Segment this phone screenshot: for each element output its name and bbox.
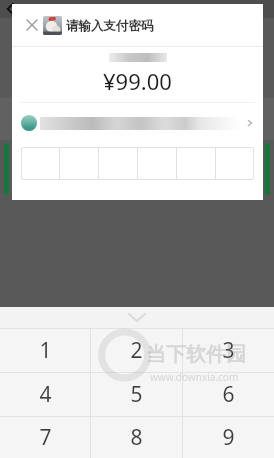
staticText: 2 [130, 336, 143, 365]
button[interactable]: 7 [0, 417, 90, 458]
button[interactable]: 8 [91, 417, 182, 458]
staticText: www.downxia.com [150, 370, 239, 384]
staticText: 请输入支付密码 [66, 18, 154, 34]
staticText: 6 [222, 380, 235, 409]
staticText: 5 [130, 380, 143, 409]
staticText: 9 [222, 423, 235, 452]
staticText: 8 [130, 423, 143, 452]
staticText: 7 [39, 423, 52, 452]
button[interactable]: 1 [0, 329, 90, 372]
button[interactable]: 2 [91, 329, 182, 372]
button[interactable]: 关闭 [20, 13, 44, 37]
button[interactable]: 3 [183, 329, 274, 372]
staticText: 3 [222, 336, 235, 365]
staticText: 当下软件园 [146, 342, 246, 367]
button[interactable]: 4 [0, 373, 90, 416]
staticText: 1 [39, 336, 52, 365]
button[interactable]: 6 [183, 373, 274, 416]
button[interactable]: 支付密码输入框 [21, 147, 254, 180]
button[interactable] [12, 103, 263, 143]
button[interactable]: 9 [183, 417, 274, 458]
staticText: ¥99.00 [103, 66, 172, 96]
button[interactable]: 5 [91, 373, 182, 416]
staticText: 4 [39, 380, 52, 409]
